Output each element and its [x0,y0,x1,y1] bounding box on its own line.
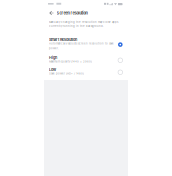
staticText: Manually changing the resolution may clo… [49,20,118,24]
staticText: Low [49,67,56,72]
staticText: Maximum quality (1440 x 2960) [49,60,92,63]
staticText: High [49,55,57,60]
staticText: Save power (HD+ / 1480) [49,72,84,75]
staticText: Automatically adjusts screen resolution … [49,42,114,45]
staticText: Smart Resolution [49,37,77,42]
staticText: power. [49,47,59,50]
button[interactable]: Screen resolution [44,9,128,17]
button[interactable]: High [44,55,128,65]
button[interactable]: Low [44,67,128,77]
staticText: currently running in the background. [49,24,104,28]
button[interactable]: Smart Resolution [44,37,128,52]
staticText: Screen resolution [57,11,88,15]
